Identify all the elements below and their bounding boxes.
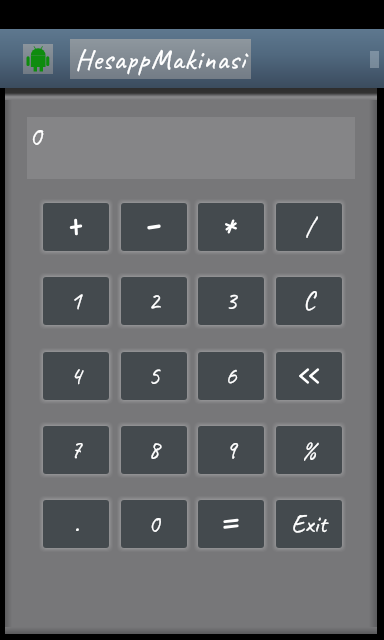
button[interactable]: % [272, 422, 346, 478]
staticText: 9 [225, 434, 237, 466]
staticText: 1 [70, 285, 82, 317]
staticText: C [303, 285, 315, 317]
staticText: 7 [70, 434, 82, 466]
staticText: HesappMakinasi [75, 41, 246, 78]
staticText: 0 [148, 508, 160, 540]
button[interactable]: 1 [39, 273, 113, 329]
staticText: . [74, 508, 79, 540]
button[interactable]: App icon [23, 44, 53, 74]
staticText: / [305, 211, 314, 243]
button[interactable]: 5 [117, 348, 191, 404]
staticText: 4 [70, 360, 82, 392]
button[interactable]: 0 [27, 117, 355, 179]
button[interactable]: + [39, 199, 113, 255]
button[interactable]: = [194, 496, 268, 552]
staticText: 6 [225, 360, 237, 392]
staticText: % [301, 434, 317, 466]
button[interactable]: HesappMakinasi [70, 39, 251, 79]
button[interactable]: 0 [117, 496, 191, 552]
button[interactable]: 6 [194, 348, 268, 404]
button[interactable]: 3 [194, 273, 268, 329]
button[interactable]: . [39, 496, 113, 552]
button[interactable]: 2 [117, 273, 191, 329]
button[interactable]: 4 [39, 348, 113, 404]
button[interactable]: 8 [117, 422, 191, 478]
staticText: 8 [148, 434, 160, 466]
button[interactable]: * [194, 199, 268, 255]
button[interactable]: / [272, 199, 346, 255]
button[interactable]: 7 [39, 422, 113, 478]
staticText: 0 [29, 118, 42, 153]
button[interactable]: << [272, 348, 346, 404]
button[interactable]: Exit [272, 496, 346, 552]
button[interactable]: C [272, 273, 346, 329]
staticText: 5 [148, 360, 160, 392]
button[interactable]: – [117, 199, 191, 255]
button[interactable]: 9 [194, 422, 268, 478]
other: App icon [23, 44, 53, 74]
staticText: 3 [225, 285, 237, 317]
staticText: 2 [148, 285, 160, 317]
staticText: Exit [291, 508, 327, 540]
